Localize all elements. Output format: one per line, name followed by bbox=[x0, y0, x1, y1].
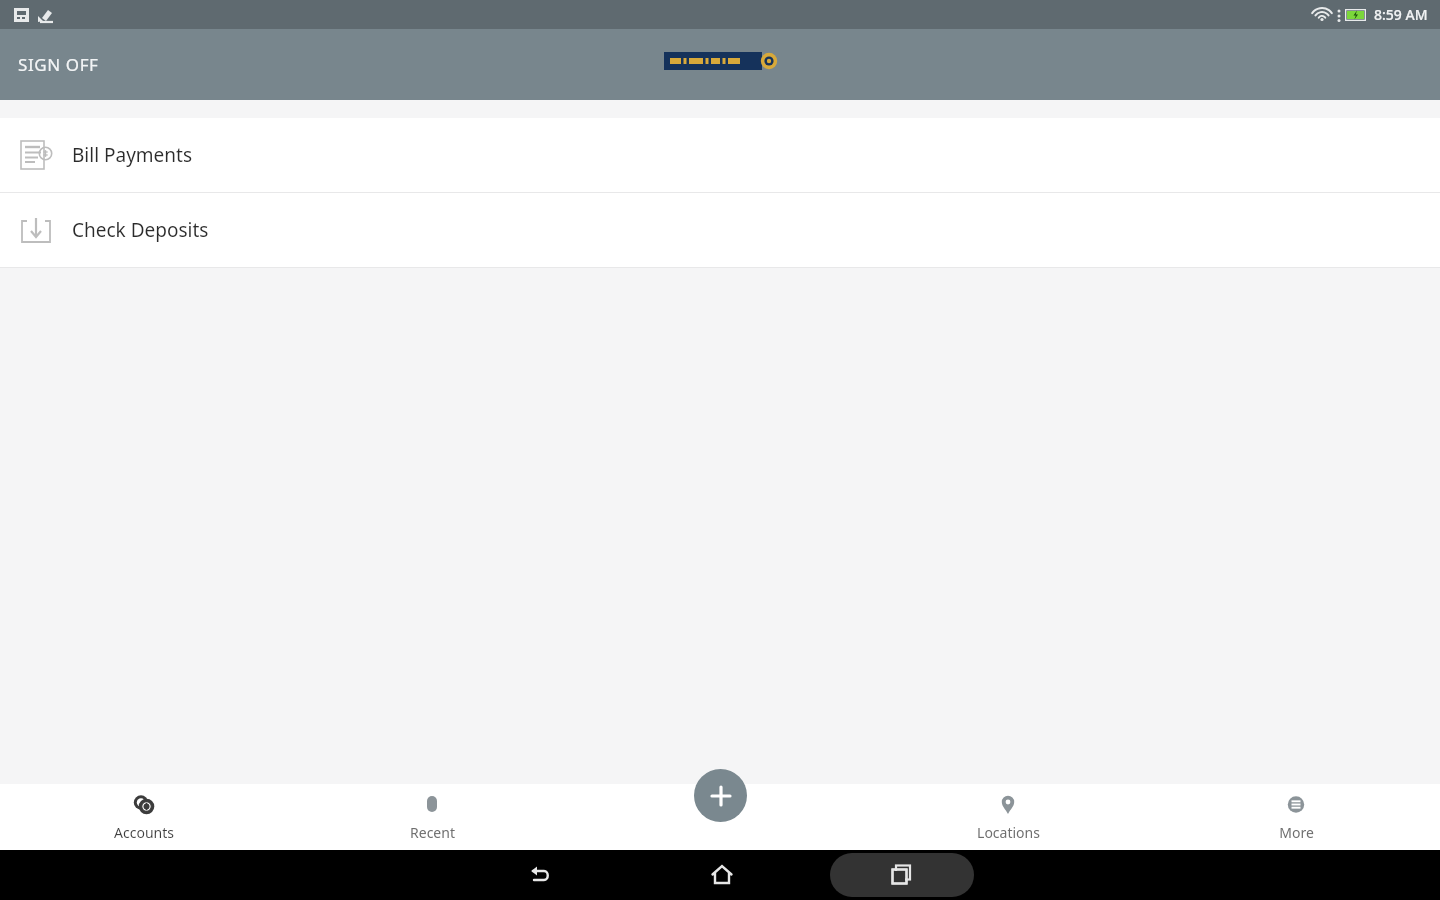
button[interactable]: Check Deposits bbox=[0, 193, 1440, 267]
button[interactable]: Bill Payments bbox=[0, 118, 1440, 192]
staticText: 8:59 AM bbox=[1374, 5, 1428, 24]
staticText: SIGN OFF bbox=[18, 53, 99, 76]
staticText: Check Deposits bbox=[72, 217, 209, 243]
button[interactable]: Back bbox=[508, 850, 572, 900]
button[interactable]: Locations bbox=[864, 784, 1152, 850]
staticText: More bbox=[1279, 823, 1314, 842]
button[interactable]: More bbox=[1152, 784, 1440, 850]
button[interactable]: Recent apps bbox=[830, 853, 974, 897]
button[interactable]: Bank logo bbox=[664, 52, 776, 70]
staticText: Recent bbox=[410, 823, 455, 842]
button[interactable]: SIGN OFF bbox=[0, 41, 117, 88]
button[interactable]: Home bbox=[690, 850, 754, 900]
button[interactable]: Recent bbox=[288, 784, 576, 850]
staticText: Locations bbox=[977, 823, 1040, 842]
staticText: Bill Payments bbox=[72, 142, 193, 168]
staticText: Accounts bbox=[114, 823, 174, 842]
button[interactable]: Accounts bbox=[0, 784, 288, 850]
button[interactable]: Add bbox=[694, 769, 747, 822]
